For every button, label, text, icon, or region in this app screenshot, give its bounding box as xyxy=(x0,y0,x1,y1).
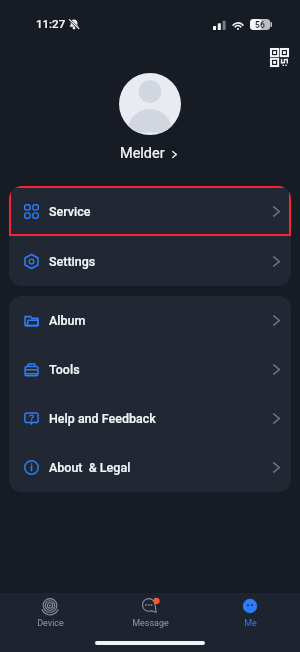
button[interactable]: Tools xyxy=(9,345,291,394)
staticText: Melder xyxy=(120,145,165,162)
button[interactable]: Message xyxy=(100,597,200,629)
staticText: About & Legal xyxy=(49,460,131,475)
button[interactable]: Album xyxy=(9,296,291,345)
button[interactable]: Profile photo xyxy=(119,73,181,135)
staticText: Me xyxy=(244,618,257,629)
staticText: Help and Feedback xyxy=(49,411,156,426)
button[interactable]: Service xyxy=(9,186,291,236)
staticText: Tools xyxy=(49,362,80,377)
button[interactable]: About & Legal xyxy=(9,443,291,492)
staticText: Message xyxy=(132,618,169,629)
button[interactable]: Settings xyxy=(9,236,291,286)
button[interactable]: Melder xyxy=(0,145,300,162)
button[interactable]: Device xyxy=(0,597,100,629)
button[interactable]: Me xyxy=(200,597,300,629)
staticText: 56 xyxy=(255,20,265,30)
button[interactable]: Help and Feedback xyxy=(9,394,291,443)
staticText: 11:27 xyxy=(36,17,66,30)
staticText: Settings xyxy=(49,254,96,269)
staticText: Device xyxy=(37,618,64,629)
staticText: Service xyxy=(49,204,91,219)
button[interactable]: Scan QR code xyxy=(267,45,291,69)
staticText: Album xyxy=(49,313,86,328)
